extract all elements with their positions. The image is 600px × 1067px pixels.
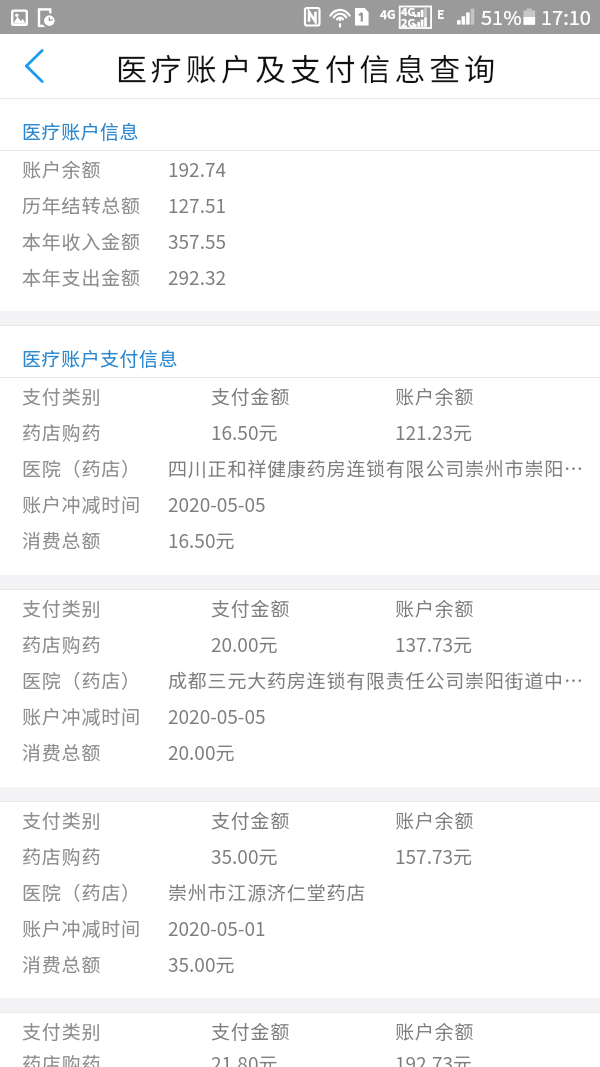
- button[interactable]: 支付类别: [0, 1013, 600, 1049]
- staticText: 账户余额: [395, 1017, 475, 1045]
- staticText: 20.00元: [168, 738, 586, 766]
- button[interactable]: 医院（药店）: [0, 450, 600, 486]
- staticText: 支付金额: [211, 806, 291, 834]
- staticText: 崇州市江源济仁堂药店: [168, 878, 586, 906]
- staticText: 本年支出金额: [22, 263, 141, 291]
- button[interactable]: 账户冲减时间: [0, 486, 600, 522]
- staticText: 2G: [401, 14, 416, 30]
- staticText: 157.73元: [395, 842, 473, 870]
- staticText: 2020-05-05: [168, 702, 586, 730]
- staticText: 消费总额: [22, 526, 102, 554]
- staticText: 消费总额: [22, 738, 102, 766]
- button[interactable]: 药店购药: [0, 414, 600, 450]
- button[interactable]: 消费总额: [0, 734, 600, 770]
- staticText: 药店购药: [22, 842, 102, 870]
- staticText: 医院（药店）: [22, 878, 141, 906]
- staticText: 支付金额: [211, 382, 291, 410]
- staticText: 16.50元: [168, 526, 586, 554]
- staticText: 121.23元: [395, 418, 473, 446]
- staticText: 2020-05-01: [168, 914, 586, 942]
- staticText: 成都三元大药房连锁有限责任公司崇阳街道中街…: [168, 666, 586, 694]
- button[interactable]: 历年结转总额: [0, 187, 600, 223]
- button[interactable]: 药店购药: [0, 626, 600, 662]
- staticText: 账户冲减时间: [22, 914, 141, 942]
- staticText: 51%: [481, 2, 522, 31]
- staticText: 17:10: [541, 2, 591, 31]
- staticText: 历年结转总额: [22, 191, 141, 219]
- staticText: 支付类别: [22, 806, 102, 834]
- staticText: 本年收入金额: [22, 227, 141, 255]
- staticText: 账户余额: [22, 155, 102, 183]
- button[interactable]: 医院（药店）: [0, 874, 600, 910]
- staticText: 192.74: [168, 155, 586, 183]
- staticText: 医疗账户及支付信息查询: [116, 45, 499, 90]
- staticText: 账户冲减时间: [22, 490, 141, 518]
- staticText: 医疗账户支付信息: [22, 344, 179, 372]
- staticText: 支付类别: [22, 1017, 102, 1045]
- button[interactable]: Back: [0, 34, 68, 98]
- staticText: 四川正和祥健康药房连锁有限公司崇州市崇阳镇中…: [168, 454, 586, 482]
- staticText: 医院（药店）: [22, 454, 141, 482]
- button[interactable]: 账户冲减时间: [0, 698, 600, 734]
- staticText: 支付类别: [22, 382, 102, 410]
- staticText: 192.73元: [395, 1049, 473, 1067]
- button[interactable]: 本年收入金额: [0, 223, 600, 259]
- staticText: 医院（药店）: [22, 666, 141, 694]
- staticText: 4G: [380, 5, 396, 22]
- staticText: 137.73元: [395, 630, 473, 658]
- staticText: 21.80元: [211, 1049, 278, 1067]
- button[interactable]: 支付类别: [0, 590, 600, 626]
- staticText: 127.51: [168, 191, 586, 219]
- staticText: 16.50元: [211, 418, 278, 446]
- staticText: 医疗账户信息: [22, 117, 140, 145]
- button[interactable]: 账户余额: [0, 151, 600, 187]
- staticText: 支付金额: [211, 594, 291, 622]
- button[interactable]: 药店购药: [0, 1049, 600, 1067]
- staticText: 消费总额: [22, 950, 102, 978]
- staticText: 账户余额: [395, 806, 475, 834]
- staticText: 支付类别: [22, 594, 102, 622]
- staticText: 35.00元: [211, 842, 278, 870]
- staticText: 账户余额: [395, 382, 475, 410]
- staticText: 4G: [401, 3, 416, 19]
- staticText: 20.00元: [211, 630, 278, 658]
- staticText: 支付金额: [211, 1017, 291, 1045]
- staticText: 药店购药: [22, 630, 102, 658]
- staticText: 357.55: [168, 227, 586, 255]
- button[interactable]: 支付类别: [0, 802, 600, 838]
- staticText: 账户冲减时间: [22, 702, 141, 730]
- staticText: 35.00元: [168, 950, 586, 978]
- button[interactable]: 账户冲减时间: [0, 910, 600, 946]
- button[interactable]: 消费总额: [0, 522, 600, 558]
- staticText: 药店购药: [22, 1049, 102, 1067]
- button[interactable]: 医院（药店）: [0, 662, 600, 698]
- button[interactable]: 药店购药: [0, 838, 600, 874]
- staticText: E: [437, 5, 445, 22]
- button[interactable]: 本年支出金额: [0, 259, 600, 295]
- button[interactable]: 支付类别: [0, 378, 600, 414]
- staticText: 292.32: [168, 263, 586, 291]
- button[interactable]: 消费总额: [0, 946, 600, 982]
- staticText: 2020-05-05: [168, 490, 586, 518]
- staticText: 药店购药: [22, 418, 102, 446]
- staticText: 账户余额: [395, 594, 475, 622]
